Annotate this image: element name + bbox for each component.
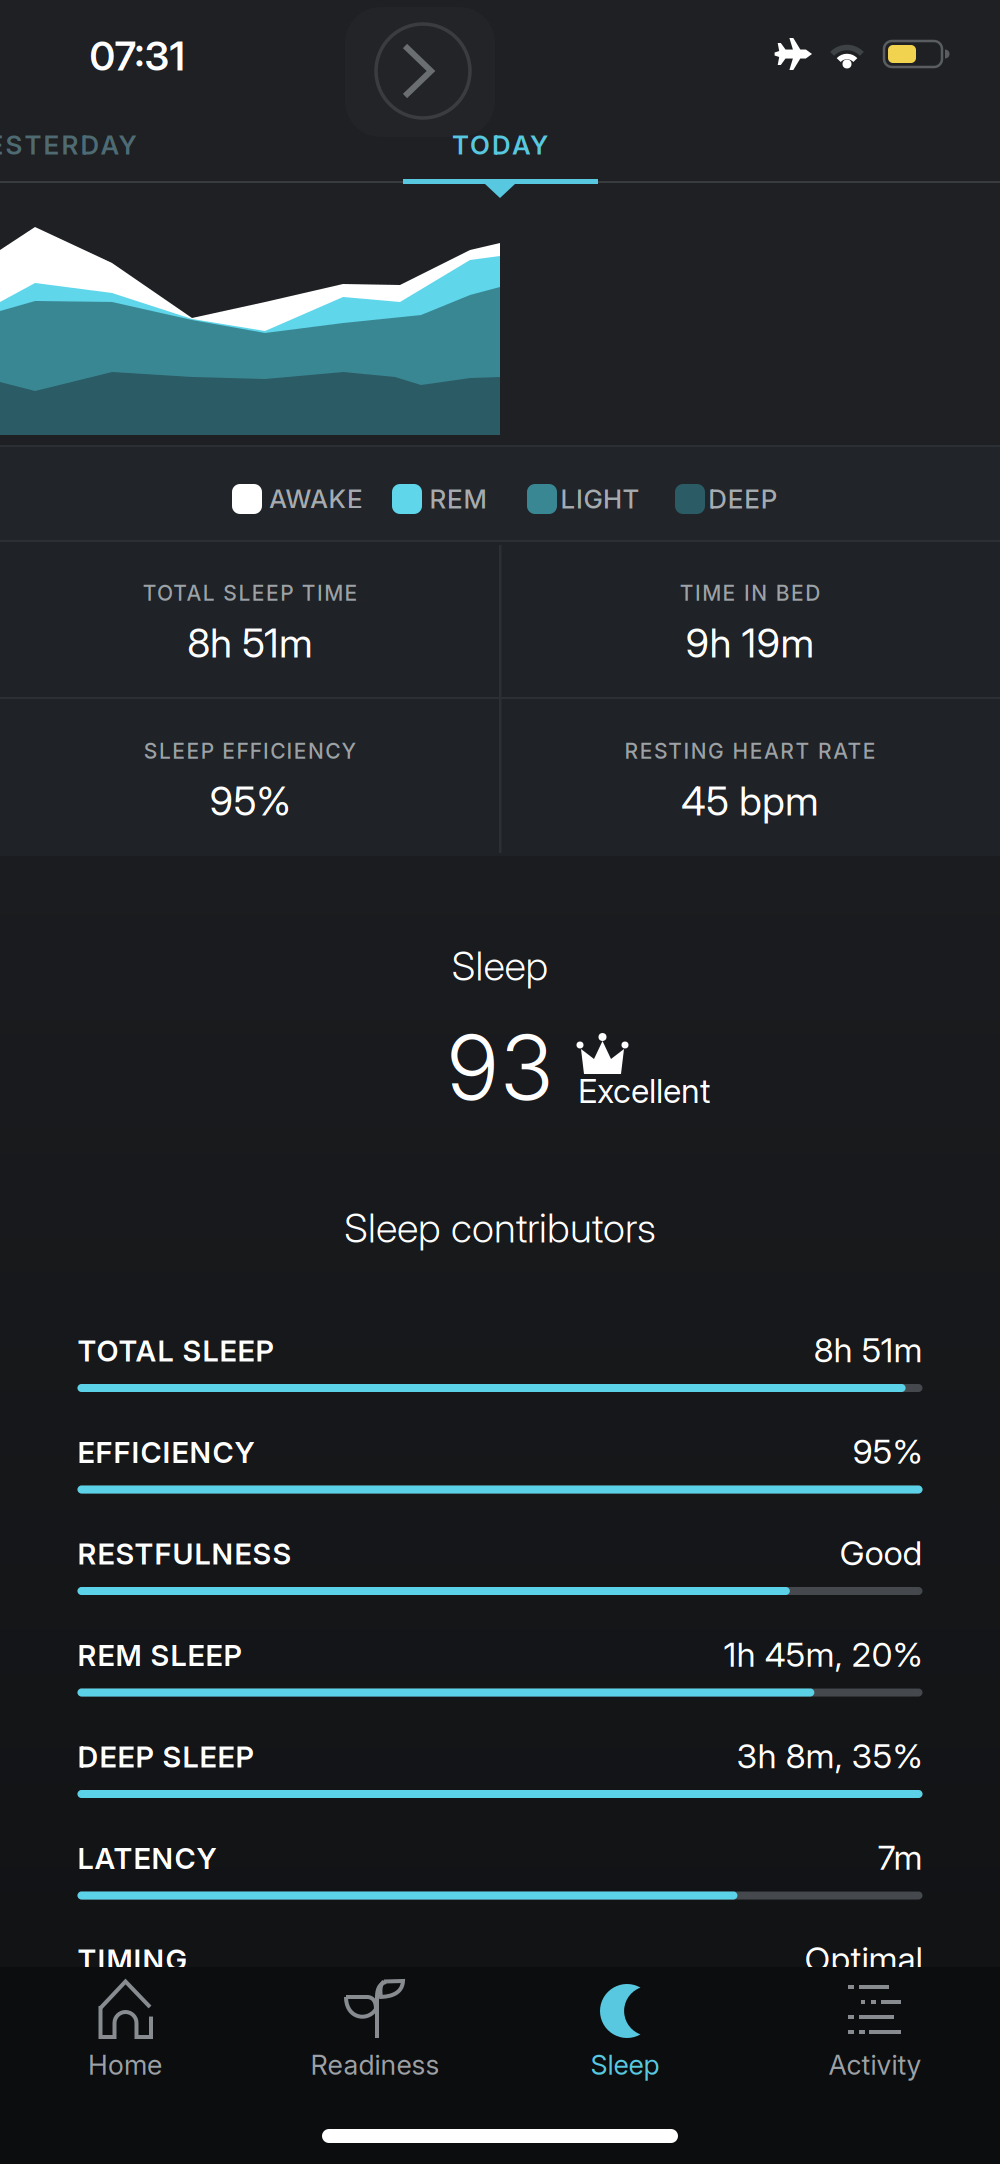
staticText: Home bbox=[88, 2049, 162, 2081]
staticText: Good bbox=[839, 1532, 922, 1573]
staticText: 95% bbox=[209, 777, 290, 825]
staticText: TOTAL SLEEP TIME bbox=[143, 580, 357, 606]
staticText: LATENCY bbox=[77, 1841, 216, 1876]
staticText: 7m bbox=[877, 1837, 922, 1878]
button[interactable]: YESTERDAY bbox=[0, 129, 136, 161]
staticText: 93 bbox=[445, 1013, 554, 1121]
staticText: 45 bpm bbox=[681, 777, 819, 825]
button[interactable] bbox=[345, 7, 495, 137]
staticText: DEEP SLEEP bbox=[77, 1739, 253, 1775]
staticText: EFFICIENCY bbox=[77, 1435, 254, 1470]
button[interactable]: Readiness bbox=[250, 1967, 500, 2164]
staticText: LIGHT bbox=[560, 483, 639, 515]
staticText: Activity bbox=[828, 2049, 921, 2081]
staticText: 1h 45m, 20% bbox=[723, 1634, 922, 1675]
staticText: 8h 51m bbox=[187, 619, 313, 667]
staticText: YESTERDAY bbox=[0, 129, 136, 161]
button[interactable]: Activity bbox=[750, 1967, 1000, 2164]
staticText: Sleep bbox=[451, 942, 548, 990]
button[interactable]: Sleep bbox=[500, 1967, 750, 2164]
staticText: SLEEP EFFICIENCY bbox=[144, 738, 356, 764]
staticText: 3h 8m, 35% bbox=[736, 1735, 922, 1776]
staticText: 07:31 bbox=[89, 32, 184, 80]
staticText: RESTFULNESS bbox=[77, 1536, 291, 1572]
staticText: 95% bbox=[852, 1431, 922, 1472]
staticText: 9h 19m bbox=[685, 619, 814, 667]
staticText: TODAY bbox=[452, 129, 548, 161]
staticText: Readiness bbox=[310, 2049, 439, 2081]
staticText: RESTING HEART RATE bbox=[624, 738, 876, 764]
staticText: Sleep contributors bbox=[344, 1204, 656, 1252]
staticText: TIMING bbox=[77, 1942, 187, 1978]
staticText: REM bbox=[429, 483, 486, 515]
staticText: AWAKE bbox=[269, 483, 363, 515]
staticText: DEEP bbox=[708, 483, 778, 515]
staticText: REM SLEEP bbox=[77, 1638, 241, 1673]
button[interactable]: Home bbox=[0, 1967, 250, 2164]
button[interactable]: TODAY bbox=[400, 120, 600, 170]
staticText: Excellent bbox=[578, 1071, 710, 1111]
staticText: TOTAL SLEEP bbox=[77, 1333, 273, 1369]
staticText: 8h 51m bbox=[813, 1329, 922, 1370]
staticText: Sleep bbox=[590, 2049, 659, 2081]
staticText: Optimal bbox=[804, 1938, 922, 1979]
staticText: TIME IN BED bbox=[680, 580, 820, 606]
